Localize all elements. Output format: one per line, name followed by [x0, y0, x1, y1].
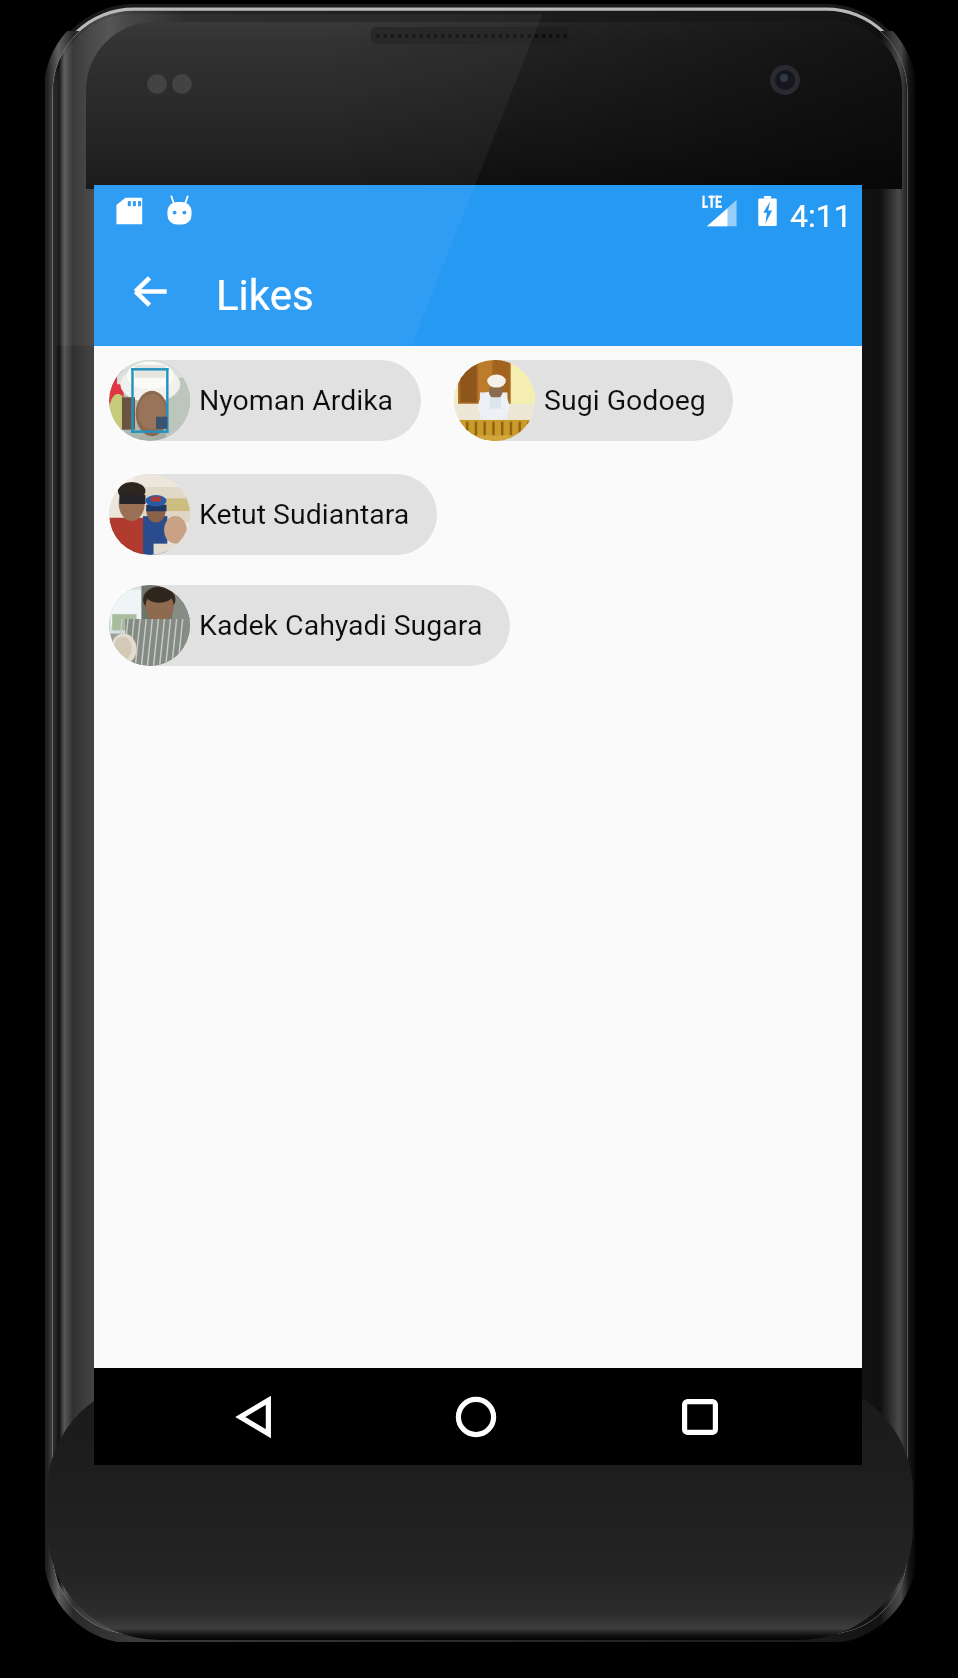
button[interactable]: Navigate up: [108, 245, 192, 337]
button[interactable]: Home: [421, 1368, 531, 1465]
button[interactable]: Sugi Godoeg: [454, 360, 733, 441]
staticText: 4:11: [790, 197, 852, 235]
staticText: Kadek Cahyadi Sugara: [199, 609, 483, 642]
staticText: Nyoman Ardika: [199, 384, 394, 417]
staticText: Ketut Sudiantara: [199, 498, 410, 531]
staticText: Sugi Godoeg: [544, 384, 706, 417]
button[interactable]: Recent apps: [645, 1368, 755, 1465]
button[interactable]: Ketut Sudiantara: [109, 474, 437, 555]
staticText: Likes: [216, 271, 314, 320]
button[interactable]: Nyoman Ardika: [109, 360, 421, 441]
button[interactable]: Kadek Cahyadi Sugara: [109, 585, 510, 666]
button[interactable]: Back: [199, 1368, 309, 1465]
